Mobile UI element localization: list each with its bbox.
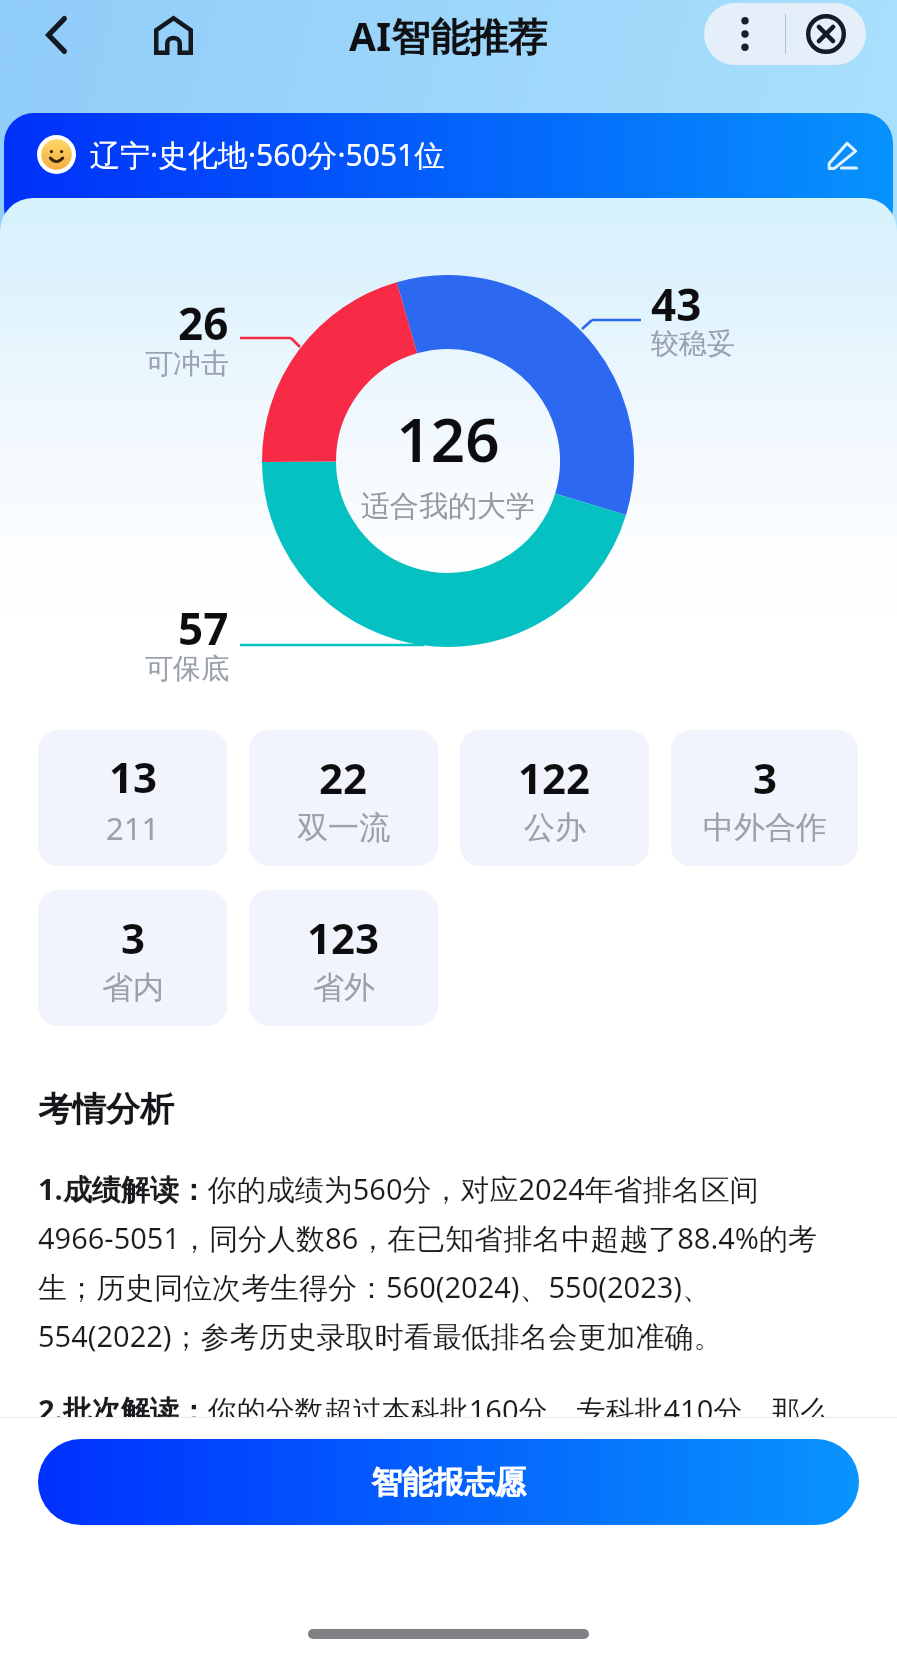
button[interactable]: Close	[786, 3, 865, 65]
button[interactable]: 123	[249, 890, 438, 1026]
staticText: 辽宁·史化地·560分·5051位	[90, 134, 445, 175]
button[interactable]: 13	[38, 730, 227, 866]
staticText: 公办	[524, 808, 586, 847]
staticText: AI智能推荐	[349, 9, 548, 62]
button[interactable]: More options	[704, 3, 785, 65]
staticText: 可冲击	[145, 346, 229, 381]
staticText: 适合我的大学	[298, 488, 598, 525]
button[interactable]: 3	[38, 890, 227, 1026]
staticText: 123	[307, 909, 380, 966]
staticText: 22	[319, 749, 368, 806]
button[interactable]: 22	[249, 730, 438, 866]
button[interactable]: 122	[460, 730, 649, 866]
button[interactable]: 智能报志愿	[38, 1439, 859, 1525]
staticText: 211	[106, 807, 160, 849]
staticText: 1.成绩解读：你的成绩为560分，对应2024年省排名区间 4966-5051，…	[38, 1169, 817, 1355]
staticText: 2.批次解读：你的分数超过本科批160分，专科批410分，那么	[38, 1390, 830, 1430]
staticText: 13	[109, 748, 158, 805]
staticText: 智能报志愿	[371, 1463, 526, 1502]
button[interactable]: Back	[23, 0, 89, 70]
button[interactable]: Edit	[817, 130, 867, 180]
staticText: 57	[178, 598, 229, 658]
staticText: 中外合作	[703, 808, 827, 847]
button[interactable]: 3	[671, 730, 858, 866]
button[interactable]: 辽宁·史化地·560分·5051位	[37, 112, 867, 197]
staticText: 较稳妥	[651, 326, 735, 361]
staticText: 43	[651, 274, 702, 334]
staticText: 省外	[313, 968, 375, 1007]
staticText: 双一流	[297, 808, 390, 847]
staticText: 考情分析	[38, 1088, 174, 1131]
staticText: 3	[121, 909, 146, 966]
staticText: 可保底	[145, 651, 229, 686]
staticText: 126	[298, 398, 598, 480]
staticText: 省内	[102, 968, 164, 1007]
staticText: 122	[518, 749, 591, 806]
button[interactable]: Home	[138, 0, 208, 70]
staticText: 26	[178, 293, 229, 353]
staticText: 3	[753, 749, 778, 806]
